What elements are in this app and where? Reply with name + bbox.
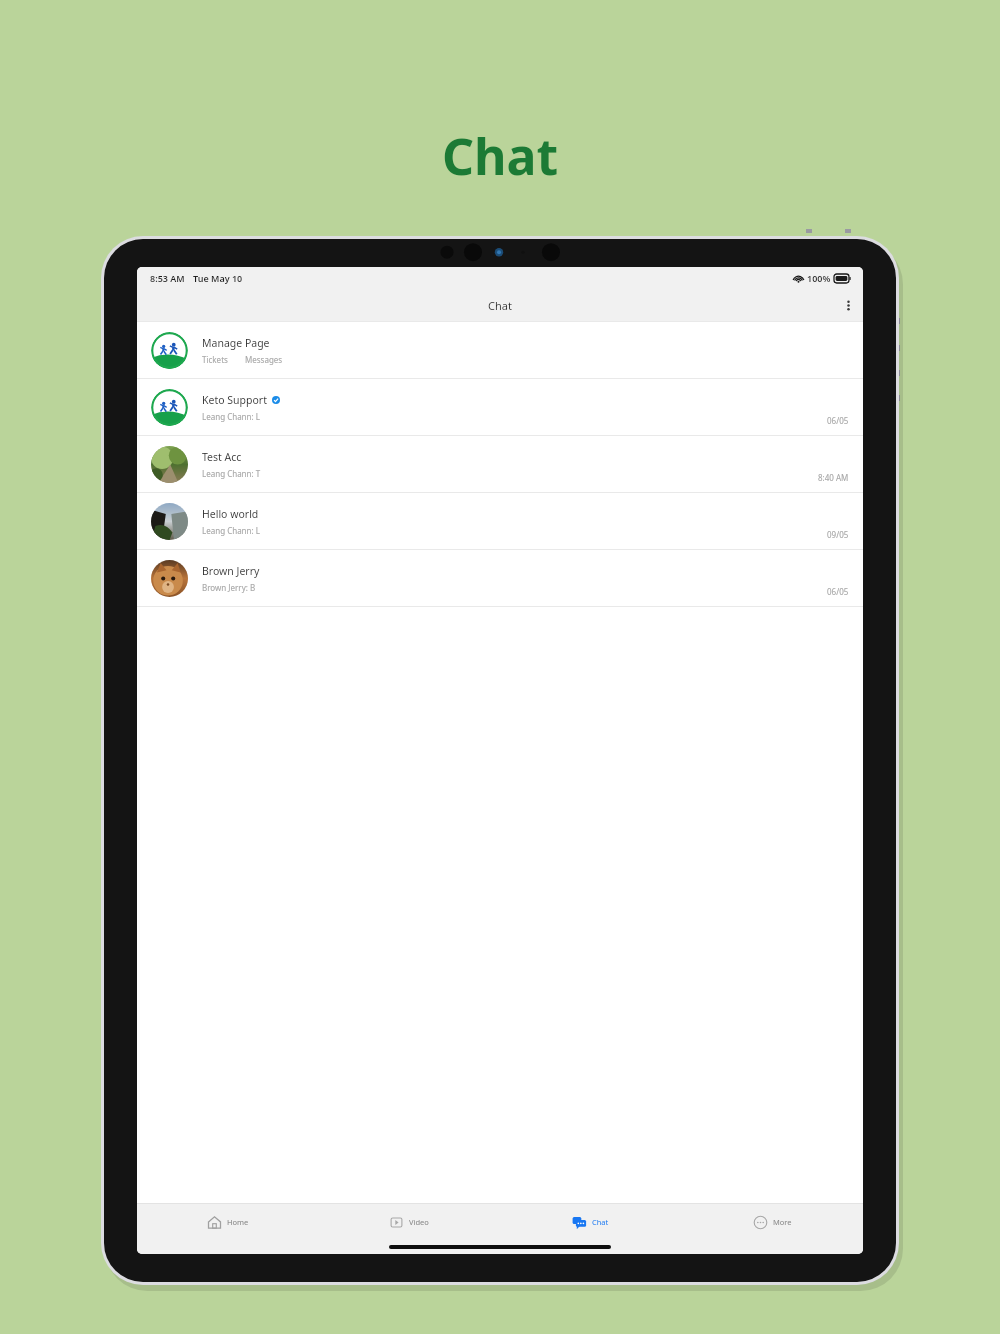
button[interactable]: More options [833,290,863,320]
staticText: Messages [245,354,283,365]
staticText: Chat [488,298,512,313]
button[interactable]: Keto Support [137,379,863,436]
staticText: 100% [807,272,831,284]
staticText: Video [409,1217,429,1227]
staticText: 06/05 [827,586,849,597]
staticText: Brown Jerry: B [202,582,256,593]
staticText: 06/05 [827,415,849,426]
button[interactable]: More [681,1204,863,1240]
staticText: Chat [442,122,559,190]
button[interactable]: Video [318,1204,499,1240]
staticText: More [773,1217,792,1227]
button[interactable]: Hello world [137,493,863,550]
staticText: Leang Chann: L [202,525,260,536]
staticText: 8:53 AM [150,272,185,284]
staticText: 09/05 [827,529,849,540]
button[interactable]: Test Acc [137,436,863,493]
staticText: Brown Jerry [202,564,260,578]
staticText: Leang Chann: T [202,468,261,479]
staticText: 8:40 AM [818,472,849,483]
button[interactable]: Manage Page [137,322,863,379]
staticText: Test Acc [202,450,242,464]
staticText: Home [227,1217,249,1227]
staticText: Manage Page [202,336,270,350]
staticText: Hello world [202,507,259,521]
staticText: Keto Support [202,393,267,407]
staticText: Leang Chann: L [202,411,260,422]
staticText: Tue May 10 [193,272,243,284]
button[interactable]: Home [137,1204,318,1240]
button[interactable]: Chat [499,1204,681,1240]
staticText: Tickets [202,354,228,365]
button[interactable]: Brown Jerry [137,550,863,607]
staticText: Chat [592,1217,609,1227]
